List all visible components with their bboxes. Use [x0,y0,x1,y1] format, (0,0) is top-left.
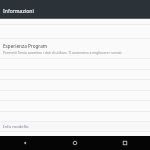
button[interactable]: Home [50,136,100,150]
staticText: Esperienza Program [3,43,48,49]
button[interactable]: Esperienza Program [0,39,150,58]
button[interactable]: Back [0,136,50,150]
button[interactable]: Recent apps [100,136,150,150]
staticText: Informazioni [3,8,34,15]
staticText: Permetti l'invio anonimo i dati di utili… [3,50,123,55]
staticText: Info modello [3,124,29,130]
button[interactable]: Info modello [0,122,150,131]
